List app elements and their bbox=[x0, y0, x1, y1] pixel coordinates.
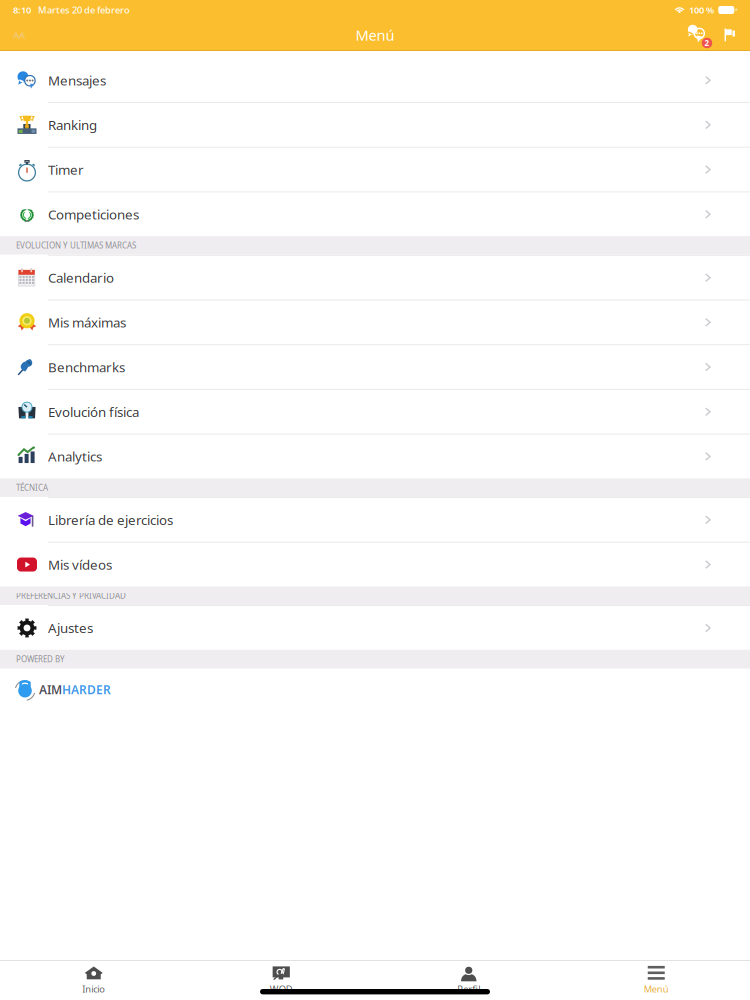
button[interactable]: Menú bbox=[562, 961, 750, 999]
button[interactable]: Competiciones bbox=[0, 191, 750, 236]
button[interactable]: Perfil bbox=[375, 961, 562, 999]
staticText: Menú bbox=[644, 983, 669, 995]
staticText: EVOLUCIÓN Y ÚLTIMAS MARCAS bbox=[16, 240, 136, 251]
staticText: Evolución física bbox=[48, 403, 139, 421]
staticText: Menú bbox=[355, 25, 394, 45]
staticText: Benchmarks bbox=[48, 358, 125, 376]
staticText: Librería de ejercicios bbox=[48, 511, 173, 529]
staticText: POWERED BY bbox=[16, 654, 65, 664]
staticText: AIM bbox=[39, 681, 62, 697]
button[interactable]: Ranking bbox=[0, 102, 750, 147]
staticText: TÉCNICA bbox=[16, 482, 48, 493]
staticText: AA bbox=[13, 29, 25, 41]
staticText: Ranking bbox=[48, 116, 97, 134]
button[interactable]: Mensajes bbox=[681, 20, 715, 50]
button[interactable]: Mis máximas bbox=[0, 299, 750, 344]
staticText: Analytics bbox=[48, 448, 102, 465]
staticText: Competiciones bbox=[48, 205, 139, 223]
staticText: Mensajes bbox=[48, 71, 106, 89]
button[interactable]: Mensajes bbox=[0, 51, 750, 102]
button[interactable]: Idioma bbox=[719, 20, 741, 50]
button[interactable]: Mis vídeos bbox=[0, 542, 750, 586]
staticText: Mis vídeos bbox=[48, 556, 112, 573]
button[interactable]: Calendario bbox=[0, 255, 750, 299]
staticText: Mis máximas bbox=[48, 313, 126, 331]
staticText: Ajustes bbox=[48, 619, 93, 637]
button[interactable]: Tamaño de texto bbox=[6, 21, 32, 49]
button[interactable]: Benchmarks bbox=[0, 344, 750, 389]
staticText: Inicio bbox=[82, 983, 105, 995]
staticText: 2 bbox=[704, 38, 709, 48]
staticText: 8:10 bbox=[13, 4, 31, 16]
staticText: Calendario bbox=[48, 269, 114, 286]
button[interactable]: Timer bbox=[0, 147, 750, 191]
button[interactable]: Evolución física bbox=[0, 389, 750, 434]
staticText: Martes 20 de febrero bbox=[38, 4, 130, 16]
staticText: 100 % bbox=[689, 4, 714, 16]
button[interactable]: Inicio bbox=[0, 961, 187, 999]
button[interactable]: Analytics bbox=[0, 434, 750, 478]
button[interactable]: Librería de ejercicios bbox=[0, 497, 750, 542]
staticText: Perfil bbox=[457, 983, 480, 995]
staticText: PREFERENCIAS Y PRIVACIDAD bbox=[16, 590, 126, 601]
button[interactable]: Ajustes bbox=[0, 605, 750, 650]
staticText: Timer bbox=[48, 161, 84, 178]
staticText: WOD bbox=[270, 983, 293, 995]
button[interactable]: WOD bbox=[187, 961, 375, 999]
staticText: HARDER bbox=[62, 681, 111, 697]
